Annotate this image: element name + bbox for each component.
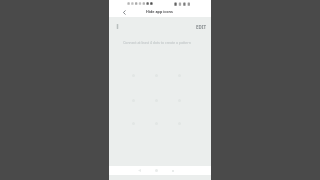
staticText: Connect at least 4 dots to create a patt… [123,40,191,45]
button[interactable]: Recents [169,167,176,174]
staticText: Hide app icons [146,9,173,14]
button[interactable]: Navigate up [119,7,129,17]
staticText: EDIT [196,24,206,30]
button[interactable]: Back [136,167,143,174]
button[interactable]: Home [153,167,160,174]
button[interactable]: EDIT [195,23,207,31]
